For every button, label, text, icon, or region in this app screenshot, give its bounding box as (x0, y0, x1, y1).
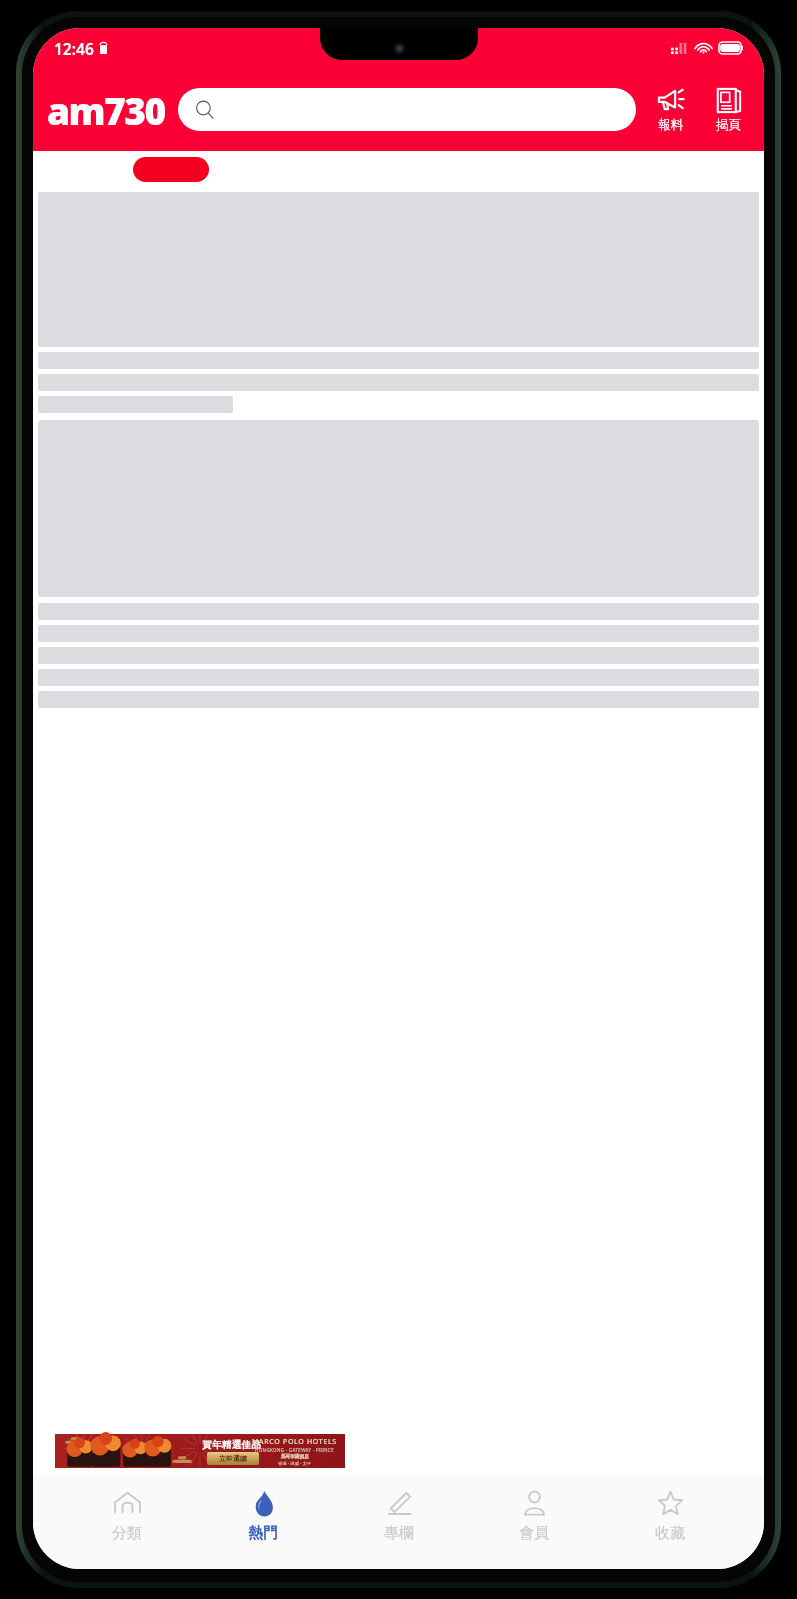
button[interactable]: am730 home (47, 85, 165, 135)
button[interactable]: 揭頁 (705, 86, 752, 133)
button[interactable]: Search (178, 88, 636, 131)
staticText: HONGKONG · GATEWAY · PRINCE (255, 1447, 334, 1453)
button[interactable]: Advertisement (55, 1434, 345, 1468)
staticText: 收藏 (655, 1524, 685, 1543)
staticText: 報料 (658, 117, 683, 133)
staticText: 會員 (519, 1524, 549, 1543)
staticText: 熱門 (248, 1524, 278, 1543)
button[interactable]: 分類 (85, 1488, 169, 1543)
button[interactable]: 會員 (492, 1488, 576, 1543)
staticText: MARCO POLO HOTELS (252, 1437, 337, 1447)
button[interactable]: 收藏 (628, 1488, 712, 1543)
staticText: 分類 (112, 1524, 142, 1543)
button[interactable]: Selected tab (133, 157, 209, 182)
staticText: 12:46 (54, 38, 94, 59)
staticText: 立即選購 (219, 1454, 247, 1463)
button[interactable]: 熱門 (221, 1488, 305, 1543)
button[interactable]: 專欄 (357, 1488, 441, 1543)
button[interactable]: 報料 (647, 86, 694, 133)
staticText: 馬哥孛羅酒店 (281, 1454, 309, 1460)
staticText: 專欄 (384, 1524, 414, 1543)
staticText: 賀年精選佳品 (202, 1439, 262, 1451)
staticText: 香港 · 港威 · 太子 (278, 1460, 312, 1466)
staticText: am730 (47, 85, 165, 135)
staticText: 揭頁 (716, 117, 741, 133)
